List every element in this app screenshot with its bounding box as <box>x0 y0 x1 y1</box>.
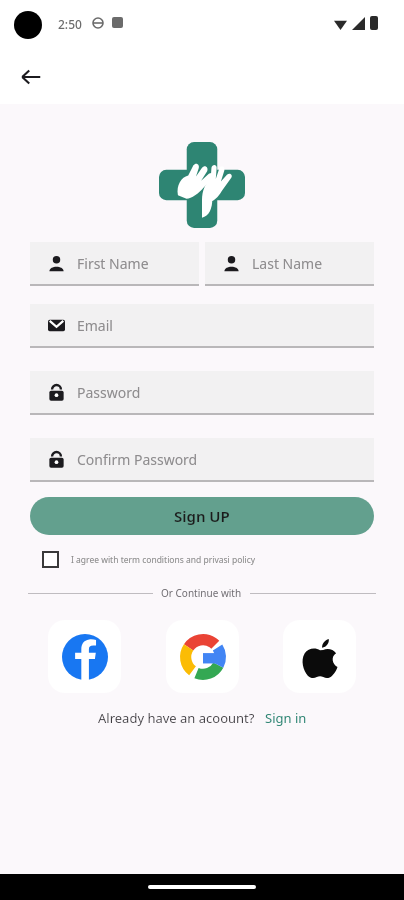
staticText: Password <box>77 383 141 402</box>
staticText: Or Continue with <box>161 586 242 600</box>
button[interactable]: Sign in <box>265 709 307 727</box>
button[interactable]: Sign up with Google <box>166 620 239 693</box>
button[interactable]: Confirm Password <box>30 438 374 482</box>
button[interactable]: Password <box>30 371 374 415</box>
button[interactable]: Email <box>30 304 374 348</box>
button[interactable]: First Name <box>30 242 199 286</box>
staticText: First Name <box>77 254 149 273</box>
staticText: Confirm Password <box>77 450 198 469</box>
staticText: Last Name <box>252 254 323 273</box>
staticText: 2:50 <box>58 16 82 32</box>
staticText: Already have an acoount? <box>98 709 255 727</box>
staticText: Sign in <box>265 709 307 727</box>
staticText: Sign UP <box>174 506 230 526</box>
button[interactable]: I agree with term conditions and privasi… <box>42 551 404 568</box>
button[interactable]: Sign up with Facebook <box>48 620 121 693</box>
staticText: Email <box>77 316 113 335</box>
button[interactable]: Back <box>10 56 52 98</box>
button[interactable]: Sign up with Apple <box>283 620 356 693</box>
button[interactable]: Last Name <box>205 242 374 286</box>
staticText: I agree with term conditions and privasi… <box>71 554 256 566</box>
button[interactable]: Sign UP <box>30 497 374 535</box>
